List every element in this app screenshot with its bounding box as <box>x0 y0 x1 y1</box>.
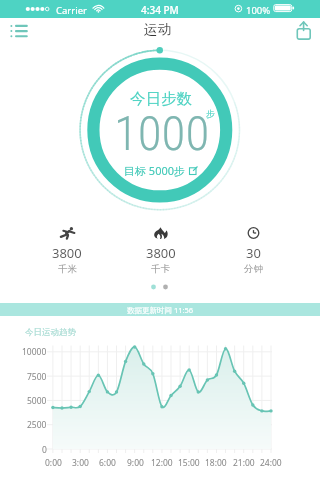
staticText: 今日运动趋势 <box>25 327 76 338</box>
button[interactable]: 3800 <box>114 227 207 275</box>
button[interactable]: 3800 <box>20 227 114 275</box>
staticText: 100% <box>246 4 271 17</box>
staticText: 今日步数 <box>130 89 192 109</box>
staticText: 21:00 <box>233 457 255 469</box>
staticText: 数据更新时间 11:56 <box>127 305 194 315</box>
staticText: 18:00 <box>205 457 227 469</box>
staticText: 千卡 <box>151 263 170 275</box>
staticText: 10000 <box>22 346 47 358</box>
staticText: 15:00 <box>178 457 200 469</box>
staticText: 3:00 <box>72 457 89 469</box>
staticText: Carrier <box>56 4 87 17</box>
staticText: 步 <box>206 108 215 119</box>
staticText: 目标 5000步 <box>124 163 186 178</box>
staticText: 2500 <box>27 419 47 431</box>
button[interactable]: 30 <box>207 227 300 275</box>
staticText: 6:00 <box>99 457 116 469</box>
button[interactable]: 目标 5000步 <box>124 163 198 178</box>
button[interactable]: Share <box>289 16 319 46</box>
staticText: 分钟 <box>244 263 263 275</box>
staticText: 千米 <box>58 263 77 275</box>
staticText: 9:00 <box>127 457 144 469</box>
staticText: 5000 <box>27 395 47 407</box>
staticText: 4:34 PM <box>141 3 179 17</box>
staticText: 24:00 <box>260 457 282 469</box>
staticText: 7500 <box>27 371 47 383</box>
staticText: 30 <box>246 244 261 262</box>
staticText: 3800 <box>146 244 176 262</box>
staticText: 3800 <box>52 244 82 262</box>
staticText: 运动 <box>144 21 171 38</box>
staticText: 0 <box>42 444 47 456</box>
staticText: 12:00 <box>151 457 173 469</box>
button[interactable]: Menu <box>4 18 34 48</box>
staticText: 0:00 <box>45 457 62 469</box>
staticText: 1000 <box>114 105 210 162</box>
